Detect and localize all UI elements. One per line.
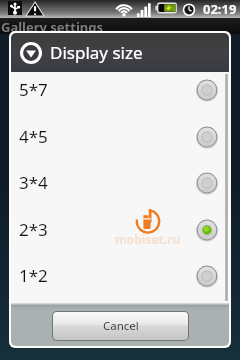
button[interactable]: 5*7: [11, 67, 229, 113]
button[interactable]: 1*2: [11, 253, 229, 299]
staticText: 1*2: [19, 264, 48, 287]
staticText: 3*4: [19, 171, 48, 194]
staticText: 5*7: [19, 78, 48, 101]
button[interactable]: 2*3: [11, 207, 229, 253]
staticText: Gallery settings: [1, 18, 103, 34]
staticText: 2*3: [19, 218, 48, 241]
button[interactable]: Cancel: [53, 312, 188, 340]
button[interactable]: 3*4: [11, 160, 229, 206]
staticText: mobiset.ru: [115, 231, 181, 247]
staticText: Cancel: [103, 318, 139, 334]
button[interactable]: 4*5: [11, 114, 229, 160]
staticText: 02:19: [203, 0, 237, 16]
staticText: Display size: [50, 41, 143, 64]
staticText: 4*5: [19, 125, 48, 148]
